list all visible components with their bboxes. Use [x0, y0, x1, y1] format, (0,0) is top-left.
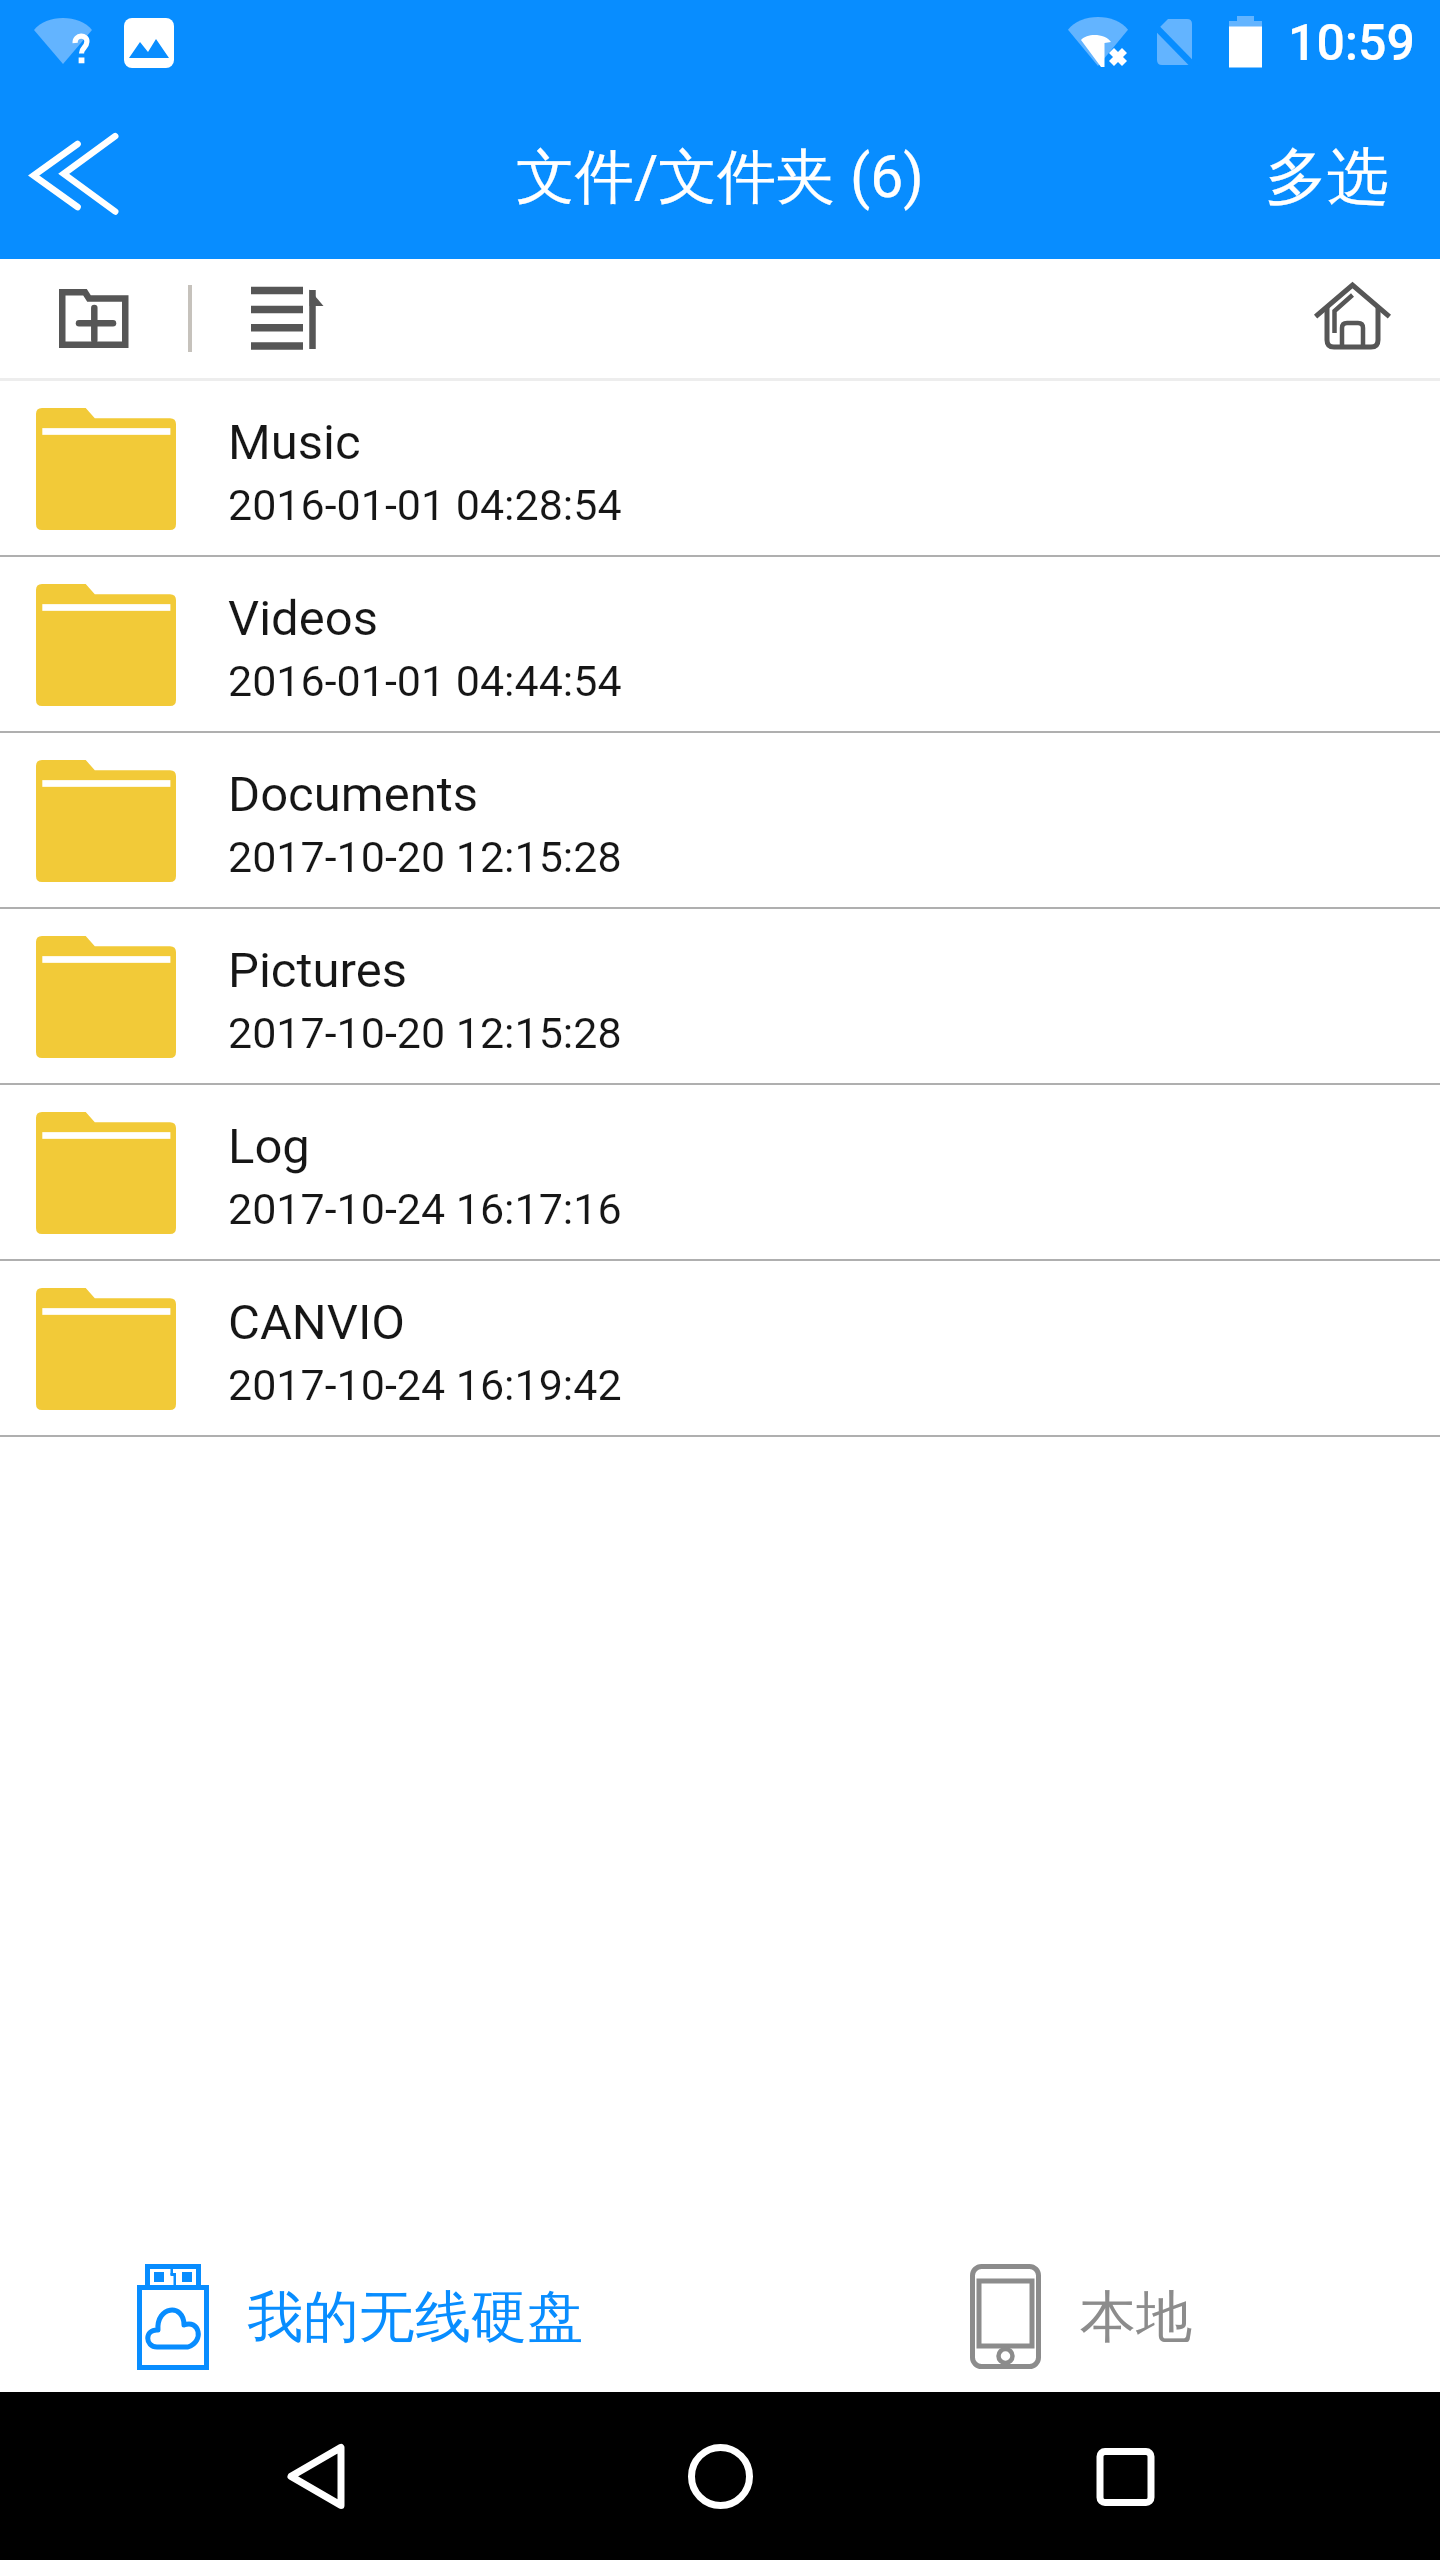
staticText: 10:59 — [1288, 14, 1415, 73]
button[interactable]: Log — [0, 1085, 1440, 1261]
button[interactable]: CANVIO — [0, 1261, 1440, 1437]
button[interactable]: Home — [654, 2392, 786, 2560]
staticText: 我的无线硬盘 — [247, 2282, 583, 2353]
button[interactable]: Sort — [226, 259, 356, 378]
button[interactable]: 我的无线硬盘 — [137, 2202, 583, 2392]
staticText: 2016-01-01 04:28:54 — [228, 480, 622, 530]
button[interactable]: Recent apps — [1060, 2392, 1192, 2560]
staticText: CANVIO — [228, 1294, 406, 1351]
button[interactable]: New folder — [19, 259, 149, 378]
staticText: 多选 — [1265, 138, 1389, 216]
staticText: Pictures — [228, 942, 407, 999]
staticText: 本地 — [1080, 2282, 1192, 2353]
staticText: 2017-10-20 12:15:28 — [228, 832, 622, 882]
staticText: Log — [228, 1118, 310, 1175]
staticText: Music — [228, 414, 361, 471]
staticText: 2017-10-24 16:19:42 — [228, 1360, 622, 1410]
staticText: 2017-10-20 12:15:28 — [228, 1008, 622, 1058]
staticText: Videos — [228, 590, 378, 647]
button[interactable]: Back — [250, 2392, 382, 2560]
staticText: 2016-01-01 04:44:54 — [228, 656, 622, 706]
staticText: 文件/文件夹 (6) — [516, 140, 924, 214]
button[interactable]: 本地 — [970, 2202, 1192, 2392]
button[interactable]: Music — [0, 381, 1440, 557]
button[interactable]: 多选 — [1240, 100, 1440, 259]
button[interactable]: Pictures — [0, 909, 1440, 1085]
button[interactable]: Back — [0, 100, 170, 259]
button[interactable]: Documents — [0, 733, 1440, 909]
staticText: Documents — [228, 766, 479, 823]
button[interactable]: Videos — [0, 557, 1440, 733]
staticText: 2017-10-24 16:17:16 — [228, 1184, 622, 1234]
button[interactable]: Home — [1300, 259, 1410, 378]
